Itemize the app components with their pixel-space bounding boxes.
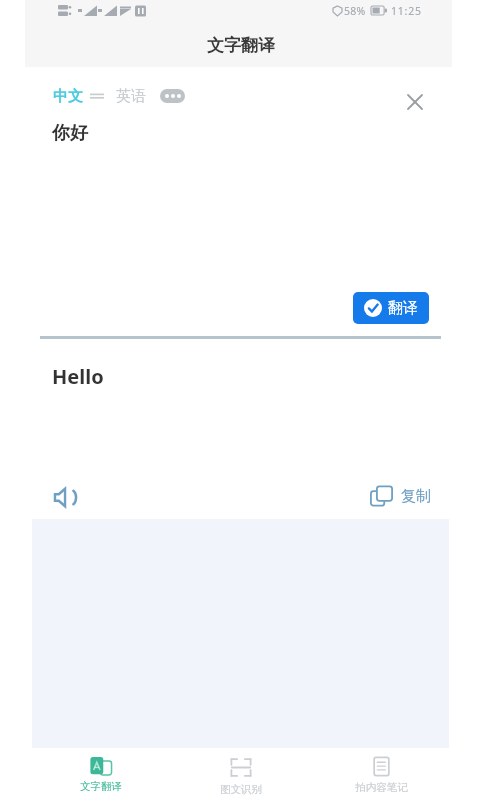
staticText: 中文 <box>53 87 83 105</box>
button[interactable]: 翻译 <box>353 292 429 324</box>
staticText: 文字翻译 <box>80 780 122 793</box>
staticText: 文字翻译 <box>207 35 275 56</box>
button[interactable]: Play pronunciation <box>52 483 80 511</box>
staticText: 58% <box>344 4 366 17</box>
staticText: 英语 <box>116 87 146 105</box>
button[interactable]: 复制 <box>370 482 431 510</box>
staticText: 复制 <box>401 487 431 506</box>
staticText: 翻译 <box>388 299 418 318</box>
staticText: 图文识别 <box>220 783 262 796</box>
staticText: 11:25 <box>391 4 422 17</box>
button[interactable]: 中文 <box>53 87 146 105</box>
staticText: Hello <box>52 363 104 390</box>
button[interactable]: More options <box>160 89 185 103</box>
staticText: 拍内容笔记 <box>355 781 408 794</box>
button[interactable]: 文字翻译 <box>30 752 171 796</box>
button[interactable]: Clear text <box>401 88 428 115</box>
staticText: 你好 <box>52 122 88 145</box>
button[interactable]: 图文识别 <box>171 752 311 796</box>
button[interactable]: 拍内容笔记 <box>311 752 451 796</box>
